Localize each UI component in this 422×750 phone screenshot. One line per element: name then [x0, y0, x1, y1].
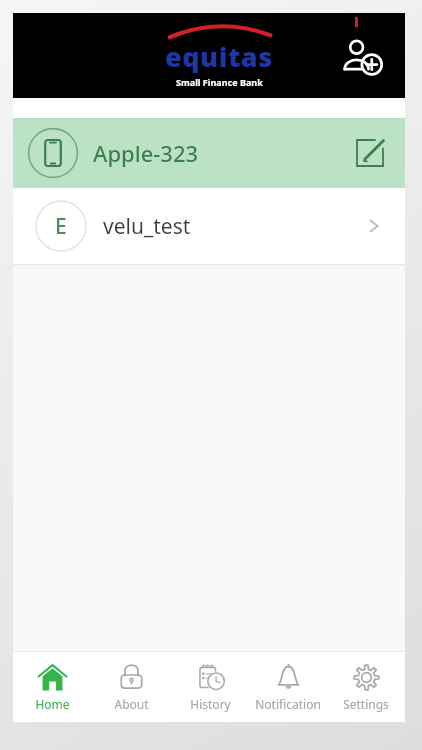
button[interactable]: Apple-323 — [13, 118, 405, 188]
button[interactable]: History — [171, 652, 249, 722]
button[interactable]: Home — [13, 652, 92, 722]
staticText: Home — [35, 696, 70, 712]
staticText: velu_test — [103, 212, 191, 241]
button[interactable]: Notification — [249, 652, 327, 722]
staticText: Apple-323 — [93, 138, 199, 168]
button[interactable]: E — [13, 188, 405, 264]
staticText: Notification — [255, 696, 321, 712]
staticText: equitas — [165, 38, 273, 75]
button[interactable]: Edit device name — [349, 132, 391, 174]
staticText: E — [55, 212, 67, 241]
staticText: About — [114, 696, 149, 712]
button[interactable]: About — [92, 652, 171, 722]
staticText: Settings — [343, 696, 389, 712]
button[interactable]: Add user — [335, 30, 387, 82]
staticText: History — [190, 696, 231, 712]
staticText: Small Finance Bank — [176, 76, 263, 88]
button[interactable]: Settings — [327, 652, 405, 722]
